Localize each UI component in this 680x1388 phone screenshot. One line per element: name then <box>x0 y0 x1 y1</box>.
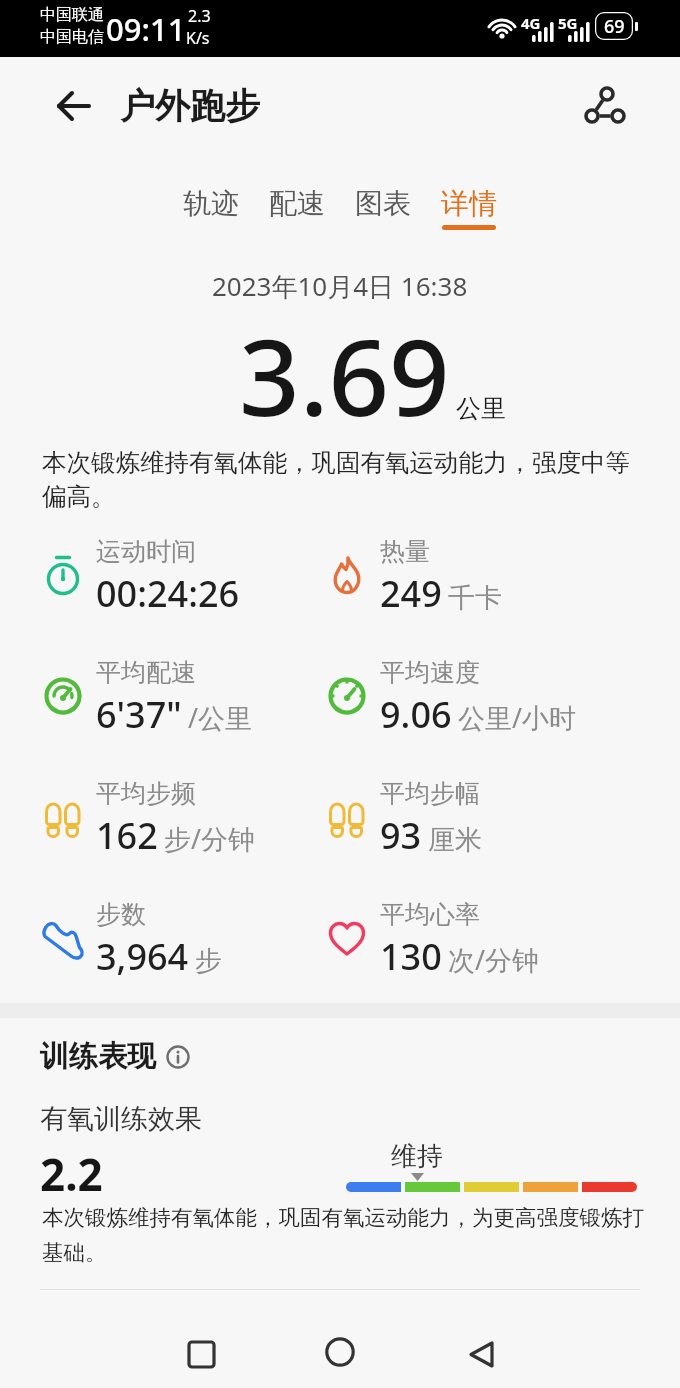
staticText: 户外跑步 <box>120 84 260 128</box>
staticText: 130 <box>380 932 442 981</box>
button[interactable]: 平均步频 <box>40 760 256 876</box>
staticText: 步数 <box>96 899 146 930</box>
staticText: 千卡 <box>448 581 502 615</box>
button[interactable] <box>319 1331 361 1373</box>
staticText: 详情 <box>441 186 497 221</box>
staticText: 93 <box>380 811 422 860</box>
staticText: 有氧训练效果 <box>40 1102 202 1136</box>
staticText: 本次锻炼维持有氧体能，巩固有氧运动能力，强度中等 偏高。 <box>42 447 630 512</box>
staticText: 步/分钟 <box>164 820 256 857</box>
staticText: 2.3 <box>188 5 211 27</box>
button[interactable]: 图表 <box>355 186 411 230</box>
staticText: 4G <box>521 13 541 33</box>
staticText: 2.2 <box>40 1144 103 1204</box>
staticText: 次/分钟 <box>448 941 540 978</box>
staticText: 3,964 <box>96 932 189 981</box>
button[interactable] <box>166 1045 189 1068</box>
staticText: 运动时间 <box>96 536 196 567</box>
button[interactable]: 平均心率 <box>324 881 540 997</box>
button[interactable]: 热量 <box>324 518 502 634</box>
button[interactable]: 运动时间 <box>40 518 240 634</box>
button[interactable]: 平均步幅 <box>324 760 482 876</box>
staticText: /公里 <box>188 699 253 736</box>
staticText: 162 <box>96 811 158 860</box>
staticText: 09:11 <box>106 8 186 50</box>
staticText: 中国联通 <box>40 5 104 25</box>
staticText: 平均配速 <box>96 657 196 688</box>
button[interactable]: 配速 <box>269 186 325 230</box>
button[interactable] <box>52 86 96 126</box>
button[interactable]: 平均速度 <box>324 639 577 755</box>
staticText: 平均步频 <box>96 778 196 809</box>
staticText: 图表 <box>355 186 411 221</box>
staticText: 00:24:26 <box>96 569 240 618</box>
button[interactable]: 详情 <box>441 186 497 230</box>
staticText: 热量 <box>380 536 430 567</box>
staticText: K/s <box>186 27 210 49</box>
staticText: 69 <box>604 14 625 39</box>
staticText: 2023年10月4日 16:38 <box>212 268 468 304</box>
staticText: 3.69 <box>239 303 450 447</box>
staticText: 249 <box>380 569 442 618</box>
staticText: 维持 <box>391 1140 443 1173</box>
staticText: 中国电信 <box>40 27 104 47</box>
staticText: 厘米 <box>428 823 482 857</box>
staticText: 平均心率 <box>380 899 480 930</box>
staticText: 平均速度 <box>380 657 480 688</box>
staticText: 本次锻炼维持有氧体能，巩固有氧运动能力，为更高强度锻炼打 基础。 <box>42 1204 644 1267</box>
staticText: 5G <box>558 13 578 33</box>
button[interactable] <box>180 1334 222 1374</box>
staticText: 公里/小时 <box>458 699 577 736</box>
staticText: 9.06 <box>380 690 452 739</box>
staticText: 公里 <box>456 393 506 424</box>
button[interactable] <box>578 80 628 130</box>
button[interactable] <box>460 1334 502 1374</box>
staticText: 配速 <box>269 186 325 221</box>
staticText: 平均步幅 <box>380 778 480 809</box>
staticText: 训练表现 <box>40 1038 156 1075</box>
staticText: 轨迹 <box>183 186 239 221</box>
staticText: 步 <box>195 944 222 978</box>
button[interactable]: 平均配速 <box>40 639 253 755</box>
button[interactable]: 步数 <box>40 881 222 997</box>
staticText: 6'37" <box>96 690 182 739</box>
button[interactable]: 轨迹 <box>183 186 239 230</box>
